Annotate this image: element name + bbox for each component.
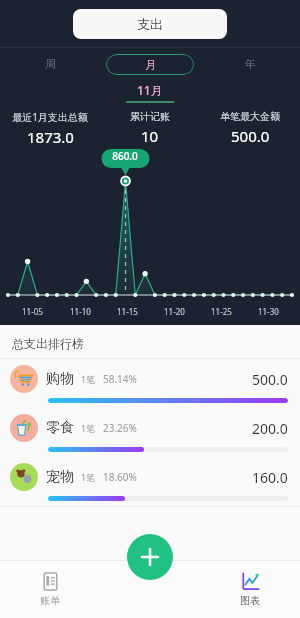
staticText: 23.26%: [103, 421, 137, 435]
button[interactable]: 周: [0, 53, 100, 75]
staticText: 购物: [46, 370, 74, 388]
staticText: 860.0: [112, 149, 138, 163]
staticText: 11-30: [258, 306, 279, 317]
staticText: 200.0: [252, 419, 288, 438]
button[interactable]: 月: [100, 53, 200, 75]
button[interactable]: 零食: [0, 408, 300, 457]
button[interactable]: 宠物: [0, 457, 300, 506]
staticText: 账单: [40, 594, 60, 607]
staticText: 1873.0: [27, 127, 74, 147]
staticText: 月: [145, 58, 156, 72]
staticText: 11-20: [164, 306, 185, 317]
staticText: 支出: [137, 16, 163, 32]
staticText: 年: [245, 57, 256, 71]
staticText: 累计记账: [130, 110, 170, 123]
staticText: 单笔最大金额: [220, 110, 280, 123]
staticText: 11-25: [211, 306, 232, 317]
staticText: 11-15: [117, 306, 138, 317]
staticText: 11月: [137, 82, 163, 98]
staticText: 11-05: [22, 306, 43, 317]
staticText: 最近1月支出总额: [12, 110, 88, 124]
staticText: 500.0: [252, 370, 288, 389]
staticText: 1笔: [81, 422, 96, 434]
staticText: 总支出排行榜: [12, 336, 84, 351]
staticText: 18.60%: [103, 470, 137, 484]
staticText: 10: [141, 126, 159, 146]
staticText: 160.0: [252, 468, 288, 487]
staticText: 1笔: [81, 471, 96, 483]
button[interactable]: 支出: [73, 9, 227, 39]
button[interactable]: 账单: [0, 560, 100, 618]
staticText: 500.0: [231, 126, 270, 146]
button[interactable]: 购物: [0, 359, 300, 408]
staticText: 零食: [46, 419, 74, 437]
button[interactable]: 图表: [200, 560, 300, 618]
staticText: 图表: [240, 594, 260, 607]
staticText: 11-10: [70, 306, 91, 317]
button[interactable]: Add record: [127, 534, 173, 580]
staticText: 58.14%: [103, 372, 137, 386]
staticText: 周: [45, 57, 56, 71]
staticText: 1笔: [81, 373, 96, 385]
staticText: 宠物: [46, 468, 74, 486]
button[interactable]: 年: [200, 53, 300, 75]
